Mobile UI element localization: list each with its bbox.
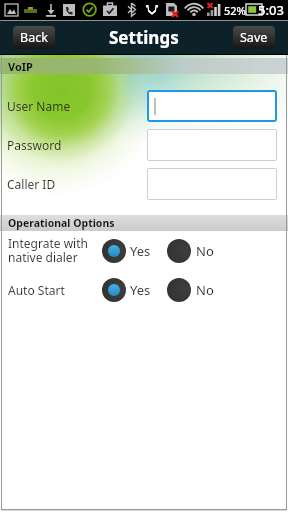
staticText: No <box>196 281 214 299</box>
button[interactable]: Save <box>233 26 275 49</box>
button[interactable]: No <box>167 278 191 302</box>
staticText: No <box>196 242 214 260</box>
button[interactable]: Back <box>13 26 55 49</box>
staticText: Integrate with native dialer <box>8 235 102 266</box>
staticText: Operational Options <box>8 216 115 230</box>
button[interactable] <box>149 92 275 120</box>
staticText: Yes <box>130 242 151 260</box>
button[interactable]: Yes <box>102 239 126 263</box>
staticText: 52% <box>224 3 246 18</box>
staticText: Auto Start <box>8 282 102 298</box>
staticText: Yes <box>130 281 151 299</box>
staticText: 5:03 <box>258 1 284 19</box>
staticText: VoIP <box>8 59 33 74</box>
staticText: Back <box>20 29 48 46</box>
staticText: Caller ID <box>7 176 147 192</box>
button[interactable]: Yes <box>102 278 126 302</box>
staticText: User Name <box>7 98 147 114</box>
staticText: Save <box>240 29 268 46</box>
button[interactable]: No <box>167 239 191 263</box>
staticText: Settings <box>109 26 179 49</box>
staticText: Password <box>7 137 147 153</box>
